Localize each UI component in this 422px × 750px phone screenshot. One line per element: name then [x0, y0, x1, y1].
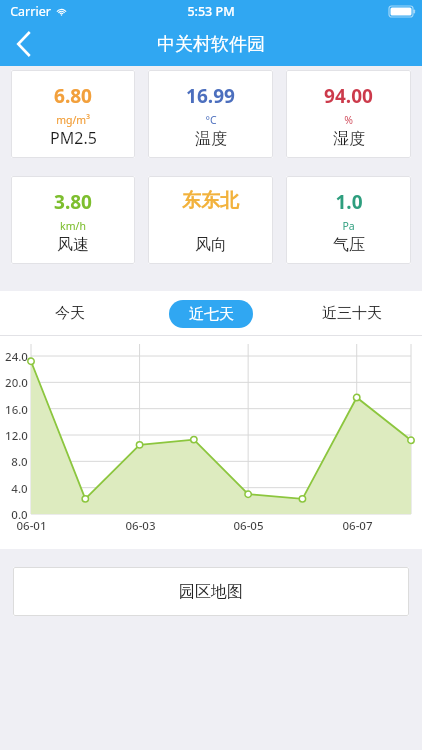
staticText: 0.0: [11, 507, 28, 523]
staticText: 近三十天: [322, 304, 382, 323]
staticText: 8.0: [11, 454, 28, 470]
button[interactable]: Back: [0, 22, 48, 66]
staticText: 24.0: [5, 349, 28, 365]
staticText: 06-01: [16, 518, 47, 534]
button[interactable]: 今天: [0, 291, 140, 336]
staticText: 06-05: [233, 518, 264, 534]
staticText: 湿度: [333, 129, 365, 149]
button[interactable]: 16.99: [148, 70, 273, 158]
staticText: 近七天: [189, 305, 234, 324]
staticText: 4.0: [11, 481, 28, 497]
staticText: mg/m³: [56, 113, 90, 127]
button[interactable]: 6.80: [11, 70, 135, 158]
staticText: 20.0: [5, 375, 28, 391]
staticText: 5:53 PM: [187, 3, 235, 20]
staticText: 中关村软件园: [157, 33, 265, 56]
staticText: 园区地图: [179, 582, 243, 602]
staticText: 94.00: [324, 83, 373, 109]
staticText: 16.0: [5, 402, 28, 418]
staticText: 气压: [333, 235, 365, 255]
button[interactable]: 近三十天: [281, 291, 422, 336]
button[interactable]: 近七天: [140, 291, 281, 336]
button[interactable]: 3.80: [11, 176, 135, 264]
staticText: %: [344, 113, 353, 127]
staticText: Carrier: [10, 3, 51, 20]
staticText: 06-07: [342, 518, 373, 534]
staticText: 今天: [55, 304, 85, 323]
button[interactable]: 94.00: [286, 70, 411, 158]
button[interactable]: 园区地图: [13, 567, 409, 616]
staticText: km/h: [60, 219, 86, 233]
staticText: 12.0: [5, 428, 28, 444]
staticText: 16.99: [186, 83, 235, 109]
staticText: 风速: [57, 235, 89, 255]
staticText: 06-03: [125, 518, 156, 534]
staticText: 东东北: [182, 189, 239, 213]
staticText: 温度: [195, 129, 227, 149]
staticText: 3.80: [54, 189, 92, 215]
staticText: Pa: [342, 219, 355, 233]
staticText: 1.0: [335, 189, 363, 215]
staticText: °C: [205, 113, 217, 127]
button[interactable]: 1.0: [286, 176, 411, 264]
staticText: 6.80: [54, 83, 92, 109]
staticText: PM2.5: [50, 127, 97, 149]
button[interactable]: 东东北: [148, 176, 273, 264]
staticText: 风向: [195, 235, 227, 255]
